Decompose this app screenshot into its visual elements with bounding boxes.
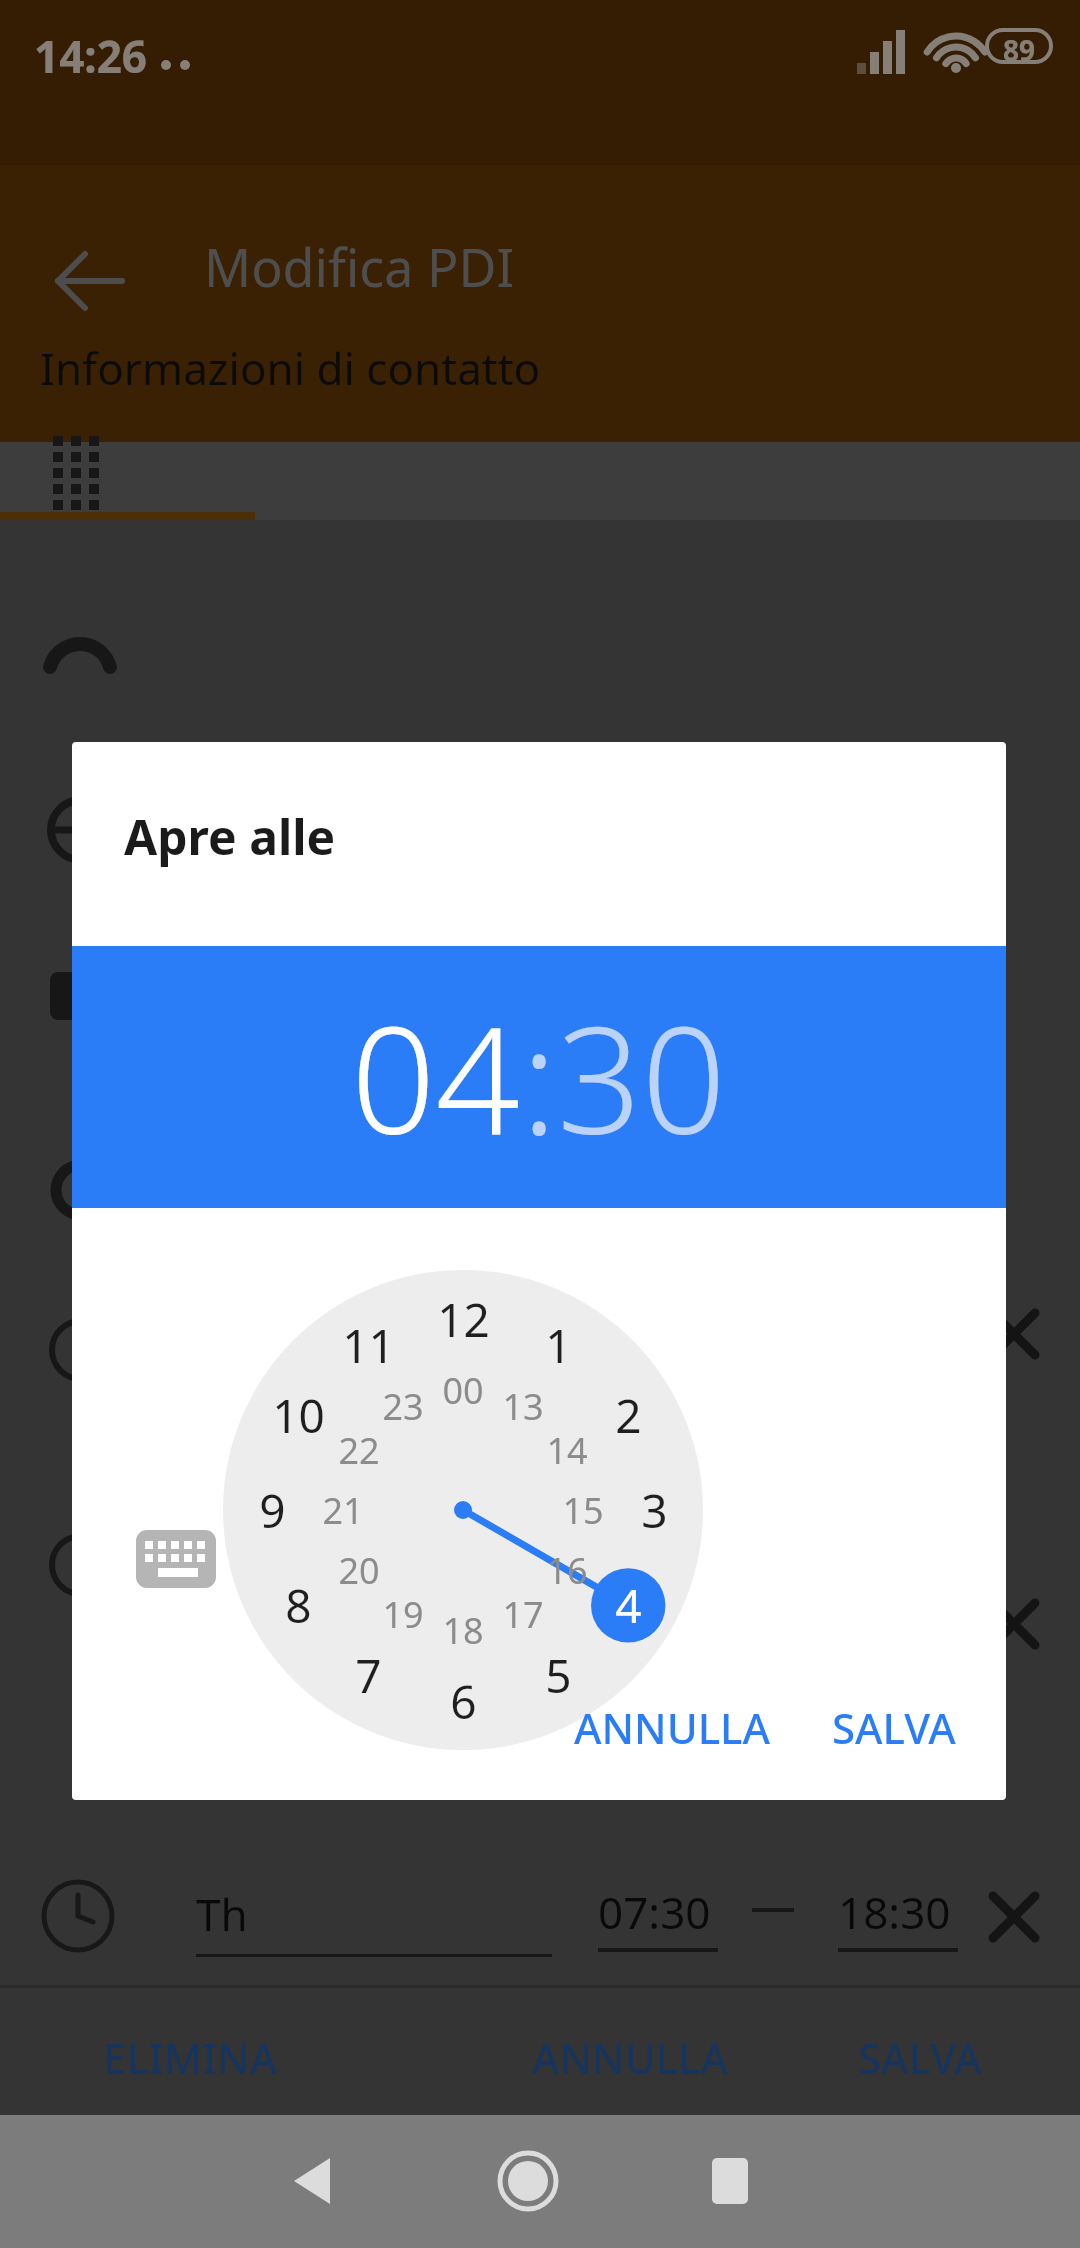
staticText: Apre alle [124,804,336,869]
staticText: ANNULLA [532,2029,729,2086]
staticText: 12 [437,1288,490,1351]
staticText: SALVA [858,2029,982,2086]
staticText: :30 [521,976,727,1178]
button[interactable]: 00 [427,1362,499,1418]
staticText: 11 [342,1314,395,1377]
staticText: 6 [450,1670,477,1733]
staticText: 2 [615,1384,642,1447]
button[interactable]: 13 [487,1378,559,1434]
button[interactable]: Back [30,222,148,340]
button[interactable]: 20 [323,1542,395,1598]
button[interactable]: 4 [586,1569,670,1641]
staticText: 22 [338,1426,380,1475]
staticText: 13 [502,1382,544,1431]
button[interactable]: SALVA [800,2015,1040,2099]
button[interactable]: 16 [531,1542,603,1598]
staticText: 19 [382,1590,424,1639]
button[interactable]: 10 [256,1379,340,1451]
button[interactable]: 22 [323,1422,395,1478]
button[interactable]: 6 [421,1665,505,1737]
staticText: ANNULLA [574,1699,771,1756]
button[interactable]: 11 [326,1309,410,1381]
staticText: 8 [285,1574,312,1637]
button[interactable]: 9 [230,1474,314,1546]
staticText: 4 [615,1574,642,1637]
button[interactable]: ANNULLA [572,1684,772,1770]
button[interactable]: 14 [531,1422,603,1478]
staticText: 14 [546,1426,588,1475]
button[interactable]: 18 [427,1602,499,1658]
staticText: SALVA [832,1699,956,1756]
staticText: 14:26 [34,26,274,96]
staticText: 3 [641,1479,668,1542]
button[interactable]: Switch to keyboard input [118,1512,230,1604]
staticText: 1 [545,1314,572,1377]
staticText: 15 [562,1486,604,1535]
button[interactable]: ELIMINA [40,2015,340,2099]
staticText: 16 [546,1546,588,1595]
staticText: Modifica PDI [204,231,824,314]
button[interactable]: 7 [326,1639,410,1711]
button[interactable]: 1 [516,1309,600,1381]
staticText: 20 [338,1546,380,1595]
staticText: 17 [502,1590,544,1639]
staticText: 21 [322,1486,364,1535]
staticText: 07:30 [598,1882,768,1952]
staticText: 18 [442,1606,484,1655]
staticText: 18:30 [838,1882,1008,1952]
staticText: 89 [985,31,1053,76]
button[interactable]: 15 [547,1482,619,1538]
staticText: 04 [351,976,521,1178]
staticText: 9 [259,1479,286,1542]
button[interactable]: 21 [307,1482,379,1538]
staticText: ELIMINA [103,2029,278,2086]
staticText: Informazioni di contatto [40,338,660,408]
button[interactable]: 2 [586,1379,670,1451]
button[interactable]: 17 [487,1586,559,1642]
button[interactable]: 3 [612,1474,696,1546]
button[interactable]: 19 [367,1586,439,1642]
staticText: 7 [355,1644,382,1707]
button[interactable]: 8 [256,1569,340,1641]
staticText: 10 [272,1384,325,1447]
staticText: 23 [382,1382,424,1431]
button[interactable]: 23 [367,1378,439,1434]
staticText: 00 [442,1366,484,1415]
button[interactable]: 12 [421,1283,505,1355]
button[interactable]: ANNULLA [490,2015,770,2099]
button[interactable]: 5 [516,1639,600,1711]
staticText: Th [196,1884,416,1954]
button[interactable]: SALVA [814,1684,974,1770]
staticText: 5 [545,1644,572,1707]
